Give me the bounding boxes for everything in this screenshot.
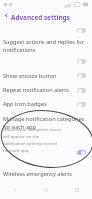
button[interactable]: Back — [61, 182, 92, 198]
button[interactable]: Toggle — [77, 59, 86, 64]
staticText: Show snooze button — [3, 72, 57, 80]
button[interactable]: Toggle — [77, 150, 86, 155]
staticText: Repeat notification alerts — [3, 86, 69, 94]
button[interactable]: Navigate up — [2, 11, 11, 20]
staticText: Manage notification categories for each … — [3, 115, 89, 130]
button[interactable]: Advanced settings — [11, 13, 70, 22]
button[interactable]: Toggle — [77, 88, 86, 93]
button[interactable]: Toggle — [77, 73, 86, 78]
button[interactable]: Home — [30, 182, 61, 198]
staticText: Advanced settings — [11, 13, 70, 22]
button[interactable]: Toggle — [77, 28, 86, 33]
staticText: Wireless emergency alerts — [3, 170, 72, 178]
staticText: Notification categories menu will appear… — [3, 126, 63, 153]
button[interactable]: Toggle — [77, 102, 86, 107]
staticText: App icon badges — [3, 100, 47, 108]
staticText: Suggest actions and replies for notifica… — [3, 38, 92, 53]
